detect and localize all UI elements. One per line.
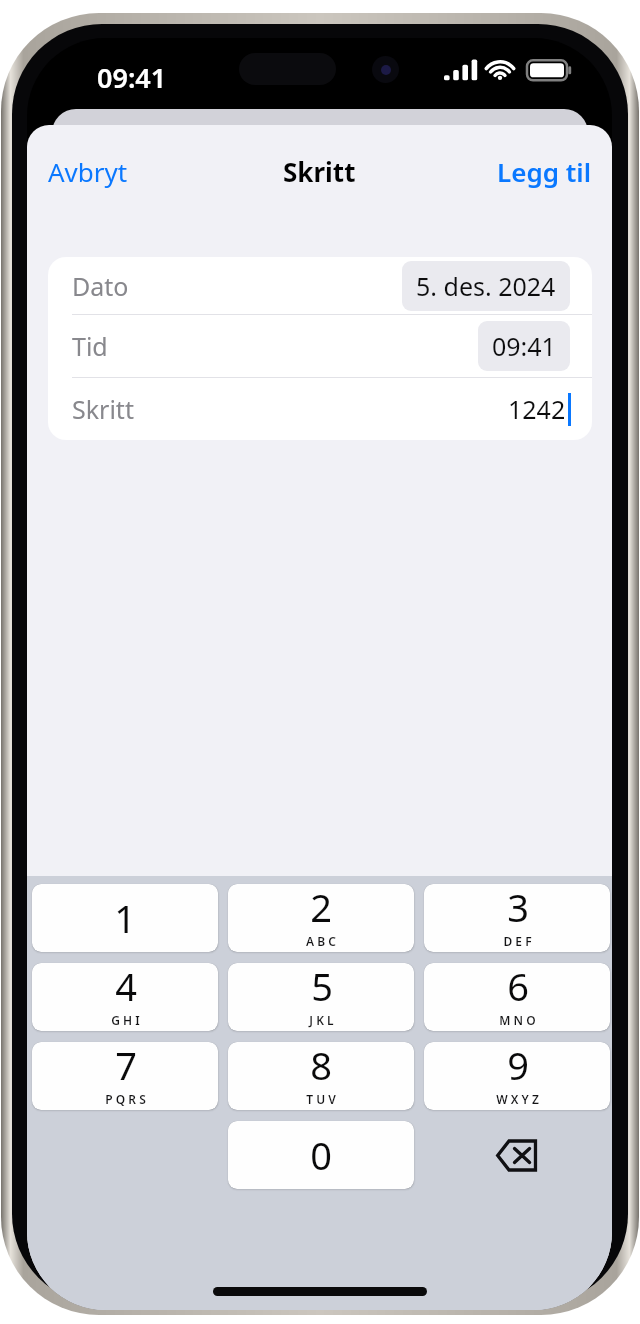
staticText: T U V xyxy=(306,1091,336,1107)
button[interactable]: Slett xyxy=(424,1121,610,1189)
staticText: 8 xyxy=(310,1042,332,1091)
staticText: 1242 xyxy=(508,392,566,426)
staticText: 09:41 xyxy=(97,59,167,96)
button[interactable]: 5 xyxy=(228,963,414,1031)
staticText: Legg til xyxy=(497,154,591,189)
staticText: 9 xyxy=(507,1042,529,1091)
button[interactable]: 6 xyxy=(424,963,610,1031)
button[interactable]: 9 xyxy=(424,1042,610,1110)
button[interactable]: 2 xyxy=(228,884,414,952)
staticText: 7 xyxy=(115,1042,137,1091)
staticText: Tid xyxy=(72,329,108,363)
staticText: W X Y Z xyxy=(496,1091,539,1107)
staticText: G H I xyxy=(111,1012,140,1028)
staticText: 3 xyxy=(507,884,529,933)
button[interactable]: 8 xyxy=(228,1042,414,1110)
button[interactable]: Tid xyxy=(48,315,592,377)
staticText: P Q R S xyxy=(105,1091,146,1107)
staticText: 6 xyxy=(507,963,529,1012)
staticText: 4 xyxy=(115,963,137,1012)
staticText: 2 xyxy=(310,884,332,933)
staticText: A B C xyxy=(306,933,336,949)
button[interactable]: 4 xyxy=(32,963,218,1031)
button[interactable]: Legg til xyxy=(481,145,607,198)
staticText: 1 xyxy=(114,892,136,944)
staticText: 5. des. 2024 xyxy=(416,269,556,303)
staticText: J K L xyxy=(309,1012,334,1028)
staticText: 5 xyxy=(311,963,333,1012)
button[interactable]: 0 xyxy=(228,1121,414,1189)
button[interactable]: Avbryt xyxy=(32,145,144,198)
staticText: Avbryt xyxy=(48,154,128,189)
button[interactable]: Skritt xyxy=(48,378,592,440)
button[interactable]: 3 xyxy=(424,884,610,952)
staticText: Skritt xyxy=(283,154,356,189)
staticText: Skritt xyxy=(72,392,134,426)
staticText: M N O xyxy=(499,1012,536,1028)
staticText: 09:41 xyxy=(492,329,556,363)
staticText: D E F xyxy=(503,933,532,949)
button[interactable]: 1 xyxy=(32,884,218,952)
button[interactable]: 7 xyxy=(32,1042,218,1110)
staticText: 0 xyxy=(310,1129,332,1181)
staticText: Dato xyxy=(72,269,129,303)
button[interactable]: Dato xyxy=(48,257,592,314)
